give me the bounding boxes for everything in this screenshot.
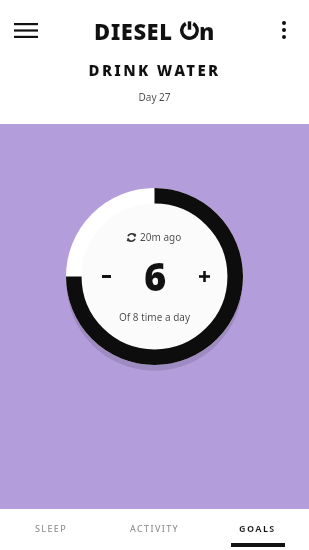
staticText: GOALS	[239, 522, 276, 534]
staticText: ACTIVITY	[130, 522, 180, 534]
button[interactable]: More options	[263, 9, 305, 51]
button[interactable]: Decrease	[92, 262, 120, 290]
button[interactable]: SLEEP	[0, 509, 103, 550]
staticText: SLEEP	[35, 522, 68, 534]
button[interactable]: Increase	[190, 262, 218, 290]
button[interactable]: Menu	[4, 8, 48, 52]
staticText: 20m ago	[140, 230, 182, 244]
staticText: Of 8 time a day	[119, 310, 191, 324]
button[interactable]: ACTIVITY	[103, 509, 206, 550]
button[interactable]: GOALS	[206, 509, 309, 550]
staticText: n	[199, 15, 215, 46]
staticText: Day 27	[0, 90, 309, 104]
staticText: DIESEL	[94, 16, 173, 46]
staticText: DRINK WATER	[0, 60, 309, 80]
staticText: 6	[144, 250, 167, 302]
